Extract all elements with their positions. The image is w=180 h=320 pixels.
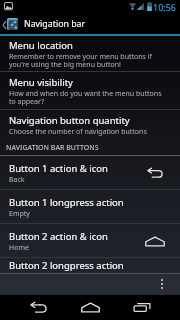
button[interactable]: More options — [153, 273, 171, 295]
staticText: 10:56 — [153, 1, 177, 13]
button[interactable]: Button 1 action & icon — [0, 156, 180, 190]
staticText: Menu visibility — [9, 76, 73, 89]
button[interactable]: Home — [74, 295, 106, 320]
staticText: Button 2 action & icon — [9, 230, 108, 243]
button[interactable]: Back — [22, 295, 54, 320]
button[interactable]: Button 2 longpress action — [0, 258, 180, 273]
staticText: NAVIGATION BAR BUTTONS — [6, 143, 99, 153]
button[interactable]: Button 1 longpress action — [0, 190, 180, 224]
button[interactable]: Button 2 action & icon — [0, 224, 180, 258]
staticText: Menu location — [9, 39, 73, 52]
staticText: Empty — [9, 209, 30, 219]
staticText: How and when do you want the menu button… — [9, 89, 162, 106]
staticText: Button 2 longpress action — [9, 259, 124, 272]
staticText: Choose the number of navigation buttons — [9, 127, 147, 137]
staticText: Navigation bar — [24, 18, 86, 30]
staticText: Home — [9, 243, 29, 253]
button[interactable]: Menu location — [0, 36, 180, 72]
button[interactable]: Navigation button quantity — [0, 110, 180, 141]
button[interactable]: Menu visibility — [0, 72, 180, 110]
button[interactable]: Navigate up — [0, 14, 22, 34]
staticText: Navigation button quantity — [9, 114, 130, 127]
staticText: Back — [9, 175, 25, 185]
staticText: Button 1 longpress action — [9, 196, 124, 209]
button[interactable]: Recent apps — [126, 295, 158, 320]
staticText: Remember to remove your menu buttons if … — [9, 52, 152, 69]
staticText: Button 1 action & icon — [9, 162, 108, 175]
